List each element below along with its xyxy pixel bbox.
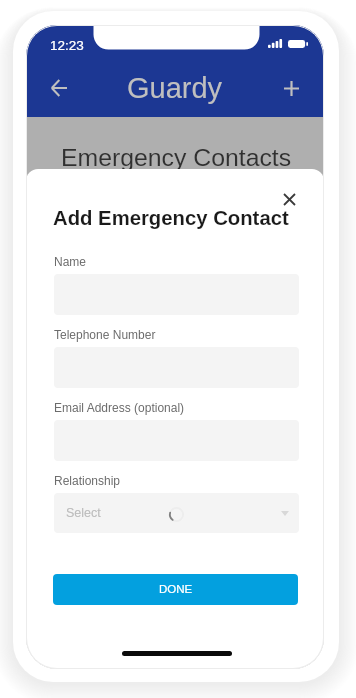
button[interactable]: Select: [54, 493, 299, 533]
button[interactable]: Close: [277, 187, 301, 211]
staticText: Select: [66, 506, 101, 520]
staticText: 12:23: [50, 38, 84, 53]
button[interactable]: DONE: [53, 574, 298, 605]
staticText: Add Emergency Contact: [53, 207, 289, 230]
staticText: Guardy: [127, 72, 223, 104]
staticText: Emergency Contacts: [61, 144, 292, 172]
staticText: Name: [54, 255, 87, 268]
button[interactable]: Back: [40, 69, 78, 107]
button[interactable]: Add contact: [272, 69, 310, 107]
staticText: Relationship: [54, 474, 121, 487]
staticText: Telephone Number: [54, 328, 156, 341]
staticText: Email Address (optional): [54, 401, 185, 414]
staticText: DONE: [159, 583, 193, 596]
